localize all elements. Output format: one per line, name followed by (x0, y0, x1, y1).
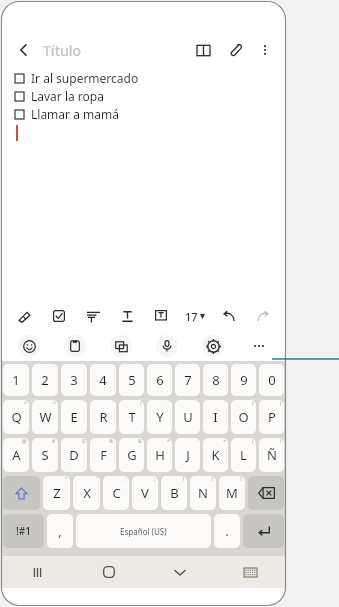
button[interactable]: 6 (147, 364, 172, 396)
button[interactable]: 4 (90, 364, 116, 396)
button[interactable]: @ (3, 438, 29, 472)
button[interactable]: More (236, 331, 282, 361)
button[interactable]: Home (73, 556, 144, 588)
staticText: ; (154, 476, 156, 483)
staticText: ? (211, 476, 214, 483)
button[interactable]: Hide keyboard (144, 556, 215, 588)
staticText: Z (53, 484, 61, 502)
button[interactable]: 17 (178, 301, 212, 331)
button[interactable]: / (119, 400, 144, 434)
button[interactable]: More options (252, 37, 278, 63)
button[interactable]: % (90, 438, 116, 472)
button[interactable]: Undo (212, 301, 246, 331)
staticText: D (69, 446, 79, 464)
staticText: + (223, 438, 226, 445)
button[interactable]: ^ (32, 400, 58, 434)
staticText: Título (43, 41, 82, 60)
button[interactable]: ' (73, 476, 100, 510)
button[interactable]: ! (161, 476, 187, 510)
button[interactable]: 8 (203, 364, 228, 396)
button[interactable]: ^ (3, 400, 29, 434)
button[interactable]: Clipboard (52, 331, 98, 361)
button[interactable]: Voice input (144, 331, 190, 361)
button[interactable]: Keyboard settings (190, 331, 236, 361)
button[interactable]: Español (US) (76, 514, 211, 548)
staticText: 8 (212, 371, 220, 389)
button[interactable]: Llamar a mamá (15, 105, 286, 123)
button[interactable]: Emoji (5, 331, 52, 361)
button[interactable]: + (203, 438, 228, 472)
button[interactable]: - (175, 438, 200, 472)
button[interactable]: ` (90, 400, 116, 434)
button[interactable]: * (147, 438, 172, 472)
staticText: V (141, 484, 149, 502)
staticText: ¨ (167, 400, 170, 407)
button[interactable]: Backspace (248, 476, 284, 510)
button[interactable]: " (43, 476, 70, 510)
button[interactable]: & (119, 438, 144, 472)
button[interactable]: : (103, 476, 129, 510)
button[interactable]: . (214, 514, 240, 548)
button[interactable]: 5 (119, 364, 144, 396)
button[interactable]: ´ (203, 400, 228, 434)
staticText: # (52, 438, 56, 445)
button[interactable]: , (47, 514, 73, 548)
button[interactable]: Indent (76, 301, 110, 331)
button[interactable]: $ (61, 438, 87, 472)
button[interactable]: Reading mode (190, 37, 216, 63)
button[interactable]: Switch keyboard (215, 556, 286, 588)
button[interactable]: 1 (3, 364, 29, 396)
staticText: ^ (24, 400, 27, 407)
staticText: H (155, 446, 165, 464)
button[interactable]: 7 (175, 364, 200, 396)
button[interactable]: Back (13, 39, 35, 61)
staticText: , (58, 522, 62, 540)
staticText: Llamar a mamá (31, 106, 119, 122)
button[interactable]: Shift (3, 476, 40, 510)
staticText: $ (82, 438, 85, 445)
button[interactable]: Text box (144, 301, 178, 331)
staticText: : (125, 476, 127, 483)
button[interactable]: ( (231, 438, 256, 472)
button[interactable]: ¨ (175, 400, 200, 434)
button[interactable]: Lavar la ropa (15, 87, 286, 105)
staticText: !#1 (16, 524, 31, 538)
button[interactable]: ? (190, 476, 216, 510)
staticText: ¨ (195, 400, 198, 407)
button[interactable]: 3 (61, 364, 87, 396)
button[interactable]: Redo (246, 301, 280, 331)
button[interactable]: ! (259, 438, 284, 472)
button[interactable]: # (32, 438, 58, 472)
staticText: F (100, 446, 107, 464)
button[interactable]: Ir al supermercado (15, 69, 286, 87)
button[interactable]: Attach (222, 37, 248, 63)
staticText: - (196, 438, 198, 445)
button[interactable]: Text style (110, 301, 144, 331)
button[interactable]: 2 (32, 364, 58, 396)
button[interactable]: ) (231, 400, 256, 434)
staticText: 1 (12, 371, 20, 389)
staticText: Y (156, 408, 164, 426)
staticText: ( (252, 438, 254, 445)
staticText: 2 (41, 371, 49, 389)
button[interactable]: Checklist (42, 301, 76, 331)
button[interactable]: ´ (61, 400, 87, 434)
button[interactable]: Translate (98, 331, 144, 361)
button[interactable]: Recents (1, 556, 73, 588)
button[interactable]: | (259, 400, 284, 434)
button[interactable]: Enter (243, 514, 284, 548)
staticText: Q (11, 408, 22, 426)
staticText: 6 (156, 371, 164, 389)
button[interactable]: 0 (259, 364, 284, 396)
button[interactable]: Handwriting (7, 301, 42, 331)
staticText: W (39, 408, 52, 426)
staticText: 4 (99, 371, 107, 389)
button[interactable]: ? (219, 476, 245, 510)
button[interactable]: 9 (231, 364, 256, 396)
staticText: Ñ (267, 446, 277, 464)
button[interactable]: ¨ (147, 400, 172, 434)
staticText: K (211, 446, 220, 464)
button[interactable]: ; (132, 476, 158, 510)
staticText: X (83, 484, 91, 502)
button[interactable]: !#1 (3, 514, 44, 548)
